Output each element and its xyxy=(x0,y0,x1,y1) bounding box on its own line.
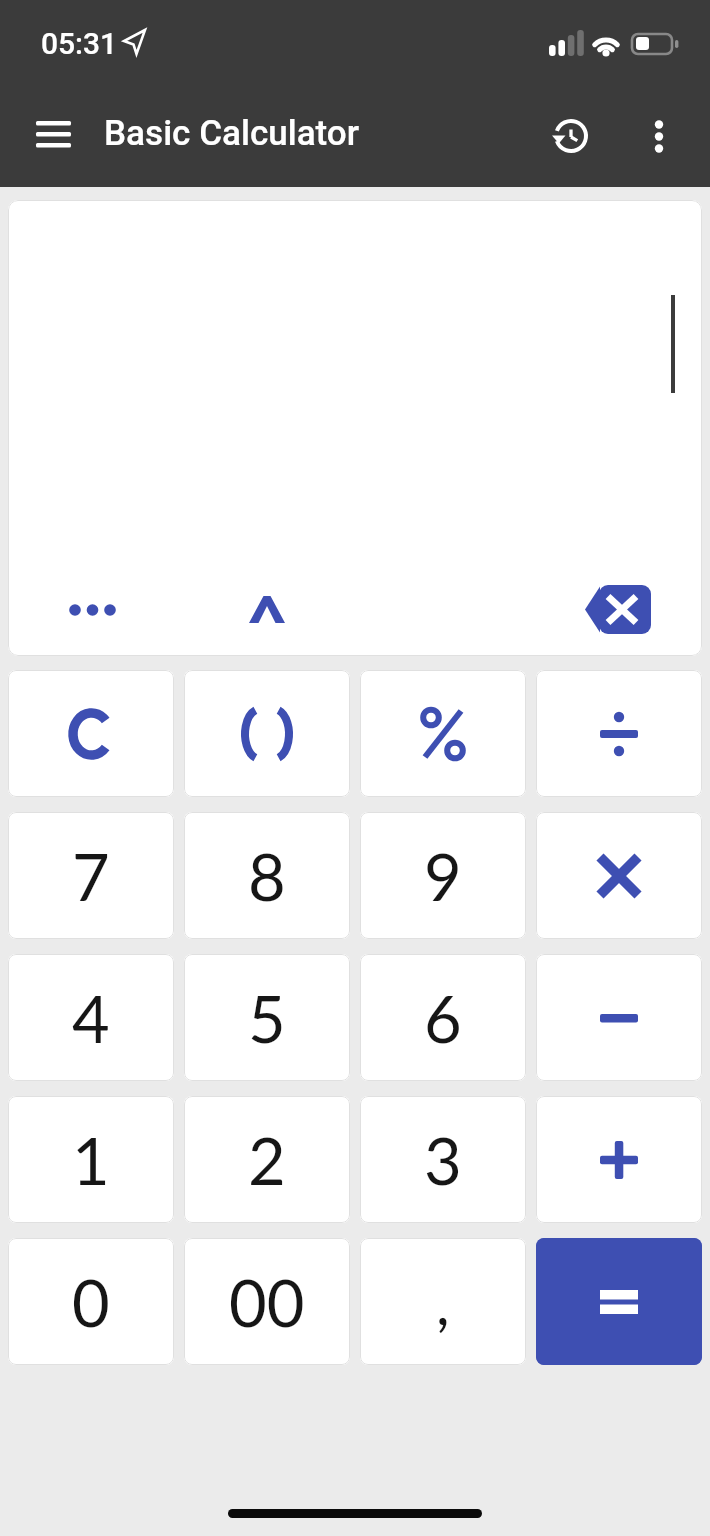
staticText: 9 xyxy=(424,837,462,915)
staticText: 05:31 xyxy=(41,26,118,61)
staticText: 8 xyxy=(248,837,286,915)
staticText: 7 xyxy=(72,837,110,915)
staticText: 6 xyxy=(424,979,462,1057)
staticText: 00 xyxy=(229,1263,305,1341)
staticText: 4 xyxy=(72,979,110,1057)
staticText: 1 xyxy=(72,1121,110,1199)
staticText: 2 xyxy=(248,1121,286,1199)
staticText: 3 xyxy=(424,1121,462,1199)
staticText: 5 xyxy=(248,979,286,1057)
staticText: , xyxy=(436,1266,450,1338)
staticText: 0 xyxy=(72,1263,110,1341)
staticText: Basic Calculator xyxy=(104,113,359,154)
